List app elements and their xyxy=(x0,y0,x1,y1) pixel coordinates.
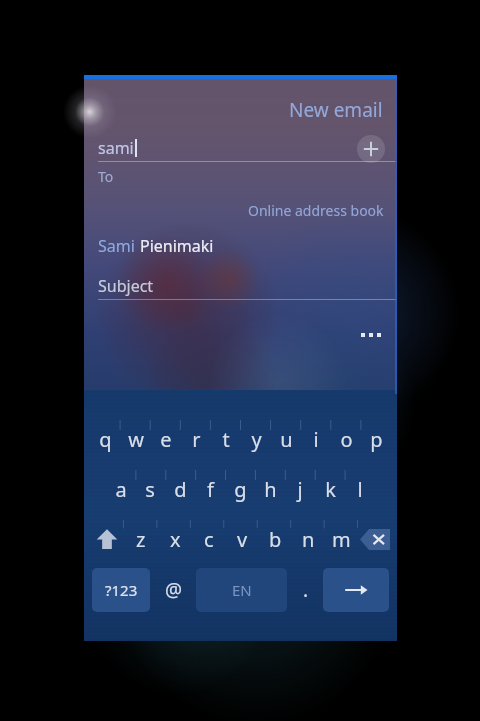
button[interactable]: Backspace xyxy=(358,520,391,558)
staticText: b xyxy=(269,526,282,553)
button[interactable]: . xyxy=(293,568,319,612)
staticText: @ xyxy=(165,577,183,603)
button[interactable]: ?123 xyxy=(92,568,150,612)
button[interactable]: a xyxy=(106,470,135,508)
button[interactable]: m xyxy=(325,520,358,558)
button[interactable]: e xyxy=(151,420,181,458)
staticText: d xyxy=(174,476,187,503)
staticText: e xyxy=(160,426,172,453)
button[interactable]: q xyxy=(90,420,121,458)
button[interactable]: b xyxy=(259,520,292,558)
button[interactable]: o xyxy=(331,420,361,458)
button[interactable]: p xyxy=(361,420,391,458)
button[interactable]: y xyxy=(241,420,271,458)
staticText: q xyxy=(99,426,112,453)
button[interactable]: New email xyxy=(289,97,383,123)
staticText: z xyxy=(136,526,146,553)
staticText: o xyxy=(340,426,353,453)
button[interactable]: Shift xyxy=(90,520,124,558)
staticText: Pienimaki xyxy=(140,235,214,257)
button[interactable]: Online address book xyxy=(248,201,384,220)
staticText: l xyxy=(357,476,363,503)
staticText: r xyxy=(192,426,201,453)
staticText: . xyxy=(303,577,309,603)
button[interactable]: Enter xyxy=(323,568,389,612)
staticText: f xyxy=(207,476,214,503)
staticText: h xyxy=(264,476,277,503)
button[interactable]: j xyxy=(285,470,315,508)
staticText: To xyxy=(98,167,114,186)
button[interactable]: t xyxy=(211,420,241,458)
staticText: k xyxy=(325,476,336,503)
staticText: a xyxy=(115,476,127,503)
staticText: t xyxy=(222,426,230,453)
button[interactable]: Subject xyxy=(98,275,154,297)
staticText: EN xyxy=(232,580,252,600)
button[interactable]: g xyxy=(225,470,255,508)
button[interactable]: s xyxy=(135,470,165,508)
staticText: Sami xyxy=(98,235,140,257)
button[interactable]: More options xyxy=(361,333,381,337)
staticText: i xyxy=(313,426,319,453)
staticText: n xyxy=(302,526,315,553)
staticText: v xyxy=(237,526,248,553)
staticText: m xyxy=(332,526,351,553)
button[interactable]: c xyxy=(192,520,226,558)
button[interactable]: u xyxy=(271,420,301,458)
button[interactable]: @ xyxy=(156,568,192,612)
staticText: c xyxy=(204,526,214,553)
button[interactable]: d xyxy=(165,470,195,508)
button[interactable]: n xyxy=(292,520,325,558)
button[interactable]: Add recipient xyxy=(357,135,385,163)
staticText: s xyxy=(145,476,155,503)
staticText: u xyxy=(280,426,293,453)
staticText: g xyxy=(234,476,247,503)
staticText: sami xyxy=(98,137,134,159)
button[interactable]: z xyxy=(124,520,158,558)
staticText: j xyxy=(297,476,303,503)
button[interactable]: i xyxy=(301,420,331,458)
button[interactable]: w xyxy=(121,420,151,458)
button[interactable]: f xyxy=(195,470,225,508)
button[interactable]: x xyxy=(158,520,192,558)
staticText: y xyxy=(251,426,262,453)
button[interactable]: v xyxy=(226,520,259,558)
button[interactable]: h xyxy=(255,470,285,508)
staticText: p xyxy=(370,426,383,453)
staticText: x xyxy=(170,526,181,553)
button[interactable]: k xyxy=(315,470,345,508)
button[interactable]: Space xyxy=(196,568,287,612)
staticText: ?123 xyxy=(105,580,138,600)
button[interactable]: l xyxy=(345,470,375,508)
button[interactable]: Sami xyxy=(98,235,214,257)
staticText: w xyxy=(128,426,144,453)
button[interactable]: r xyxy=(181,420,211,458)
